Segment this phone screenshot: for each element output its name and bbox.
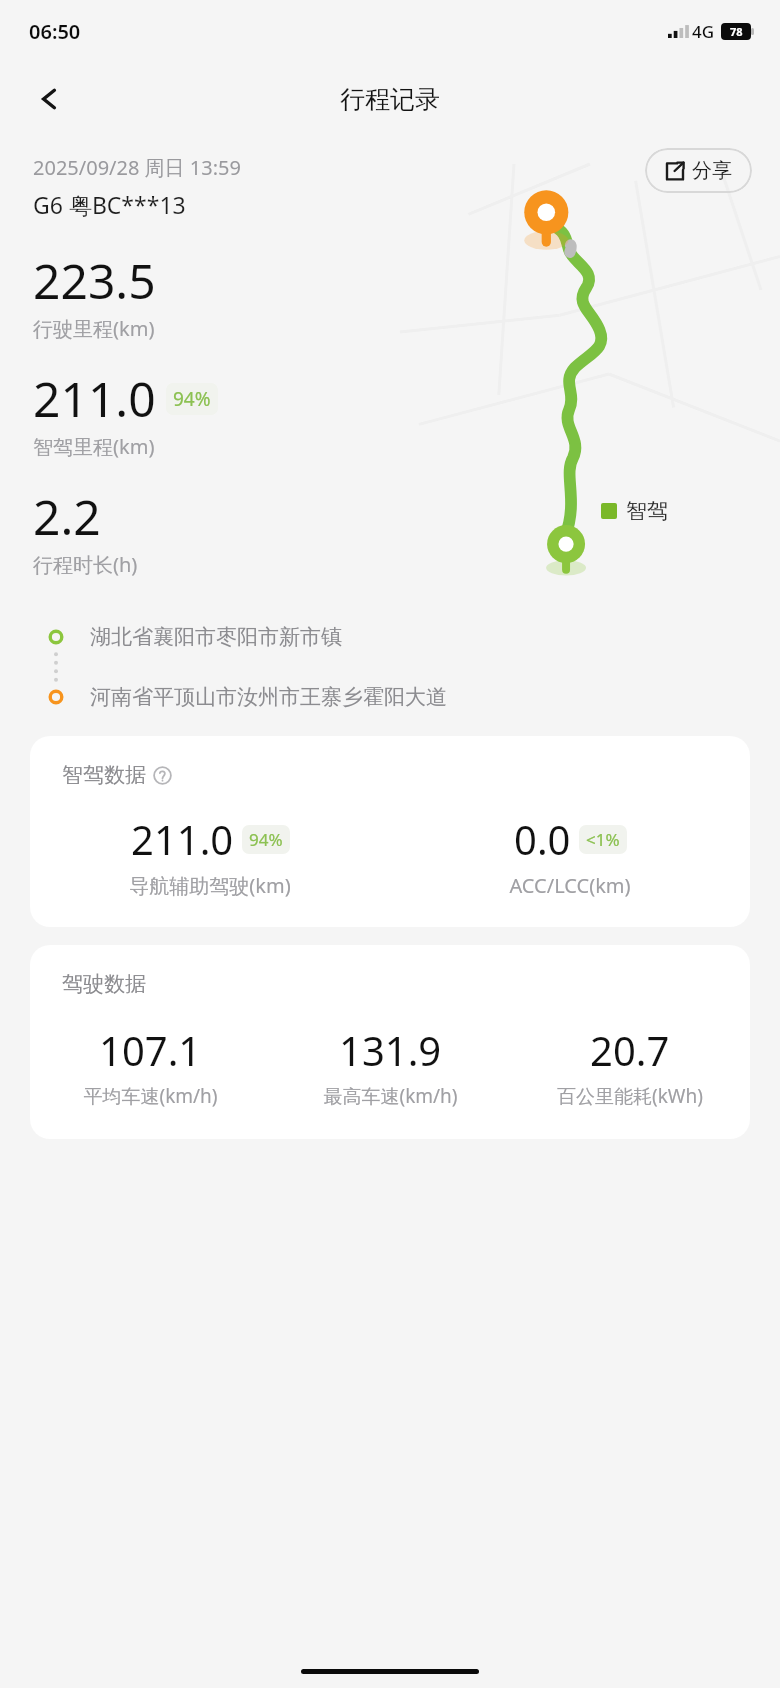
- staticText: 131.9: [339, 1023, 442, 1077]
- staticText: 智驾数据: [62, 762, 146, 788]
- staticText: 行程时长(h): [33, 551, 138, 578]
- staticText: 百公里能耗(kWh): [557, 1083, 703, 1109]
- staticText: 223.5: [33, 248, 156, 313]
- staticText: G6 粤BC***13: [33, 189, 186, 220]
- staticText: 行驶里程(km): [33, 315, 155, 342]
- staticText: <1%: [586, 828, 620, 851]
- staticText: 4G: [692, 20, 715, 43]
- staticText: 2.2: [33, 484, 101, 549]
- staticText: 0.0: [514, 812, 571, 866]
- staticText: ACC/LCC(km): [509, 872, 631, 899]
- staticText: 分享: [692, 158, 732, 183]
- button[interactable]: 智驾数据: [30, 736, 750, 927]
- staticText: 211.0: [33, 366, 156, 431]
- staticText: 导航辅助驾驶(km): [129, 872, 291, 899]
- staticText: 河南省平顶山市汝州市王寨乡霍阳大道: [90, 684, 447, 710]
- staticText: 78: [730, 24, 743, 39]
- button[interactable]: Back: [24, 73, 76, 125]
- staticText: 20.7: [590, 1023, 670, 1077]
- staticText: 211.0: [131, 812, 234, 866]
- staticText: 平均车速(km/h): [83, 1083, 218, 1109]
- staticText: 2025/09/28 周日 13:59: [33, 154, 241, 181]
- button[interactable]: 驾驶数据: [30, 945, 750, 1139]
- staticText: 智驾: [626, 498, 668, 524]
- staticText: 湖北省襄阳市枣阳市新市镇: [90, 624, 342, 650]
- button[interactable]: 分享: [645, 148, 752, 193]
- staticText: 智驾里程(km): [33, 433, 155, 460]
- staticText: 06:50: [29, 18, 81, 45]
- staticText: 107.1: [99, 1023, 202, 1077]
- staticText: 最高车速(km/h): [323, 1083, 458, 1109]
- staticText: 行程记录: [340, 84, 440, 115]
- staticText: 驾驶数据: [62, 971, 146, 997]
- staticText: 94%: [173, 386, 211, 412]
- staticText: 94%: [249, 828, 283, 851]
